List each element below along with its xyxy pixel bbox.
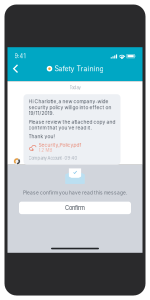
staticText: Confirm — [65, 204, 85, 211]
staticText: Safety Training — [54, 64, 103, 73]
staticText: 9:41 — [14, 53, 25, 60]
button[interactable]: Security_Policy.pdf — [28, 142, 81, 153]
staticText: Please confirm you have read this messag… — [23, 190, 127, 196]
staticText: Today — [69, 85, 80, 90]
button[interactable]: Confirm — [19, 202, 131, 214]
staticText: Company Account · 09:40 — [28, 156, 77, 161]
staticText: Thank you! — [28, 134, 54, 139]
staticText: Security_Policy.pdf — [38, 142, 81, 148]
staticText: 1.2 MB — [38, 148, 52, 153]
staticText: Please review the attached copy and conf… — [28, 119, 115, 131]
button[interactable]: Back — [12, 62, 26, 76]
staticText: Hi Charlotte, a new company-wide securit… — [28, 99, 111, 116]
